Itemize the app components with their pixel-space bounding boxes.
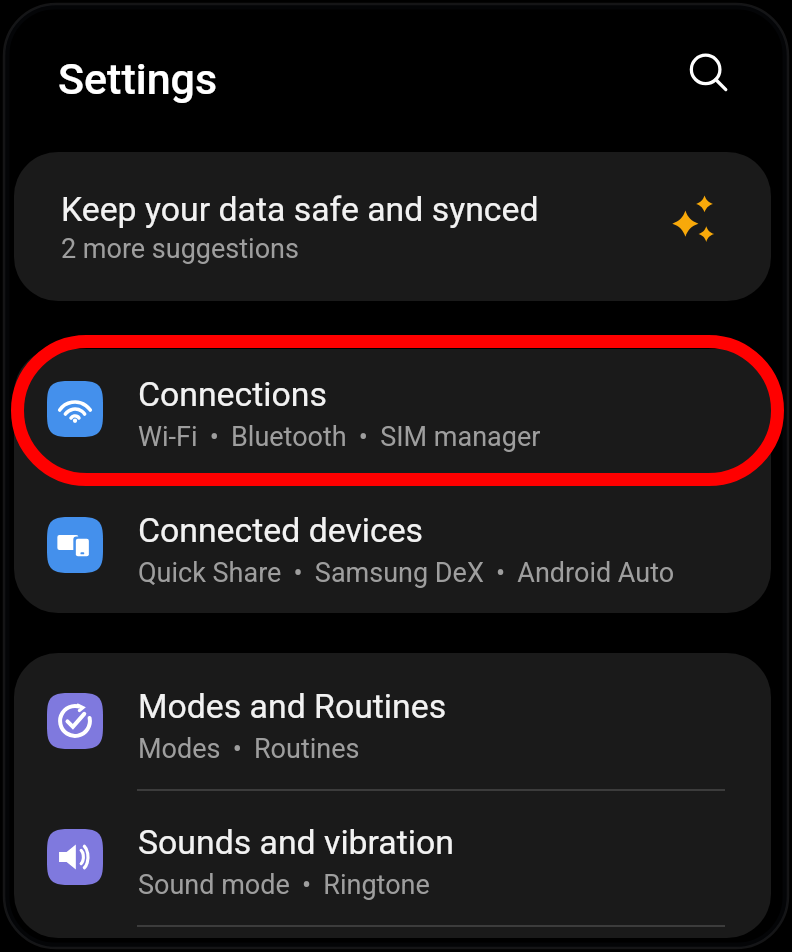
staticText: Settings bbox=[58, 54, 218, 104]
staticText: 2 more suggestions bbox=[61, 233, 299, 265]
staticText: Sounds and vibration bbox=[138, 823, 454, 863]
staticText: Connections bbox=[138, 375, 327, 415]
button[interactable]: Sounds and vibration bbox=[14, 789, 771, 925]
button[interactable]: Modes and Routines bbox=[14, 653, 771, 789]
staticText: Connected devices bbox=[138, 511, 424, 551]
staticText: Sound mode • Ringtone bbox=[138, 869, 430, 901]
staticText: Quick Share • Samsung DeX • Android Auto bbox=[138, 557, 675, 589]
button[interactable]: Search bbox=[678, 44, 740, 106]
button[interactable]: Connected devices bbox=[14, 481, 771, 613]
button[interactable]: Connections bbox=[14, 349, 771, 481]
button[interactable]: Keep your data safe and synced bbox=[14, 152, 771, 301]
staticText: Modes and Routines bbox=[138, 687, 447, 727]
staticText: Wi-Fi • Bluetooth • SIM manager bbox=[138, 421, 541, 453]
staticText: Keep your data safe and synced bbox=[61, 190, 539, 230]
staticText: Modes • Routines bbox=[138, 733, 360, 765]
button[interactable]: Settings bbox=[38, 32, 338, 126]
